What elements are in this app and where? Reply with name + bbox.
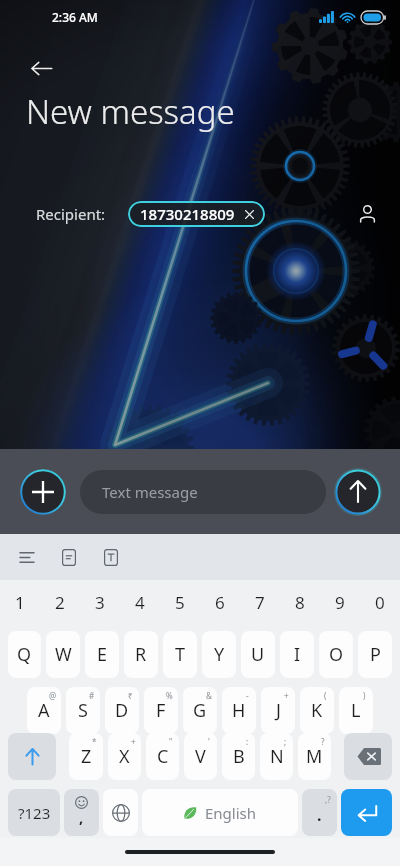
staticText: ₹ [128,690,133,701]
staticText: P [370,642,381,667]
staticText: % [166,690,173,701]
button[interactable]: * [69,733,103,780]
button[interactable]: 1 [0,580,40,624]
staticText: V [195,744,206,769]
button[interactable]: ?123 [8,789,60,836]
button[interactable]: 18730218809 [128,201,265,227]
button[interactable]: ? [298,733,331,780]
staticText: @ [49,690,57,701]
staticText: + [284,690,289,701]
button[interactable]: " [146,733,179,780]
staticText: M [306,744,323,769]
staticText: W [55,642,72,667]
staticText: English [205,803,257,823]
staticText: T [175,642,186,667]
button[interactable]: # [66,687,100,734]
button[interactable]: @ [27,687,61,734]
button[interactable]: : [222,733,255,780]
staticText: N [270,744,284,769]
button[interactable]: 2 [40,580,80,624]
staticText: " [169,736,173,747]
staticText: Z [81,744,92,769]
staticText: 0 [375,591,385,614]
button[interactable]: 6 [200,580,240,624]
button[interactable]: & [183,687,217,734]
staticText: 9 [335,591,345,614]
button[interactable]: , [64,789,99,836]
button[interactable]: 4 [120,580,160,624]
button[interactable]: 5 [160,580,200,624]
staticText: , [79,807,84,827]
button[interactable]: O [319,631,353,678]
staticText: G [193,698,207,723]
button[interactable]: U [241,631,275,678]
button[interactable]: - [222,687,256,734]
button[interactable]: + [261,687,295,734]
staticText: E [97,642,108,667]
staticText: . [317,804,322,826]
staticText: 7 [255,591,265,614]
button[interactable]: Text message [80,470,326,514]
button[interactable]: % [144,687,178,734]
staticText: R [135,642,147,667]
staticText: ) [363,690,366,701]
staticText: ?123 [18,803,51,823]
button[interactable]: Switch language [103,789,138,836]
button[interactable]: 9 [320,580,360,624]
staticText: 4 [135,591,145,614]
button[interactable]: ; [260,733,293,780]
button[interactable]: Menu [11,541,43,573]
staticText: - [246,690,249,701]
staticText: 1 [15,591,25,614]
button[interactable]: Y [202,631,236,678]
button[interactable]: Choose contact [352,199,382,229]
staticText: S [78,698,88,723]
staticText: 2 [55,591,65,614]
staticText: J [276,698,281,723]
button[interactable]: ( [300,687,334,734]
staticText: New message [26,89,235,134]
button[interactable]: Text formatting [95,541,127,573]
button[interactable]: Clipboard [53,541,85,573]
staticText: ' [208,736,210,747]
staticText: ; [284,736,287,747]
staticText: X [119,744,130,769]
staticText: F [156,698,166,723]
button[interactable]: ) [339,687,373,734]
button[interactable]: Backspace [344,733,392,780]
button[interactable]: 3 [80,580,120,624]
staticText: D [115,698,129,723]
button[interactable]: W [46,631,80,678]
staticText: Text message [102,482,198,502]
button[interactable]: Send [334,468,382,516]
button[interactable]: Add attachment [20,469,66,515]
button[interactable]: ₹ [105,687,139,734]
button[interactable]: + [108,733,141,780]
button[interactable]: T [163,631,197,678]
staticText: Recipient: [36,204,106,224]
button[interactable]: R [124,631,158,678]
button[interactable]: Back [21,48,61,88]
button[interactable]: 0 [360,580,400,624]
staticText: H [232,698,246,723]
button[interactable]: 7 [240,580,280,624]
button[interactable]: Shift [8,733,56,780]
button[interactable]: English [142,789,298,836]
button[interactable]: Enter [341,789,392,836]
button[interactable]: Q [8,631,41,678]
staticText: 8 [295,591,305,614]
button[interactable]: P [358,631,392,678]
staticText: 2:36 AM [52,9,98,25]
button[interactable]: E [85,631,119,678]
staticText: U [251,642,265,667]
button[interactable]: I [280,631,314,678]
staticText: B [233,744,245,769]
button[interactable]: 8 [280,580,320,624]
button[interactable]: ,? [302,789,337,836]
staticText: K [311,698,323,723]
button[interactable]: ' [184,733,217,780]
staticText: O [329,642,344,667]
staticText: 18730218809 [140,204,235,224]
staticText: 6 [215,591,225,614]
staticText: * [92,736,97,747]
